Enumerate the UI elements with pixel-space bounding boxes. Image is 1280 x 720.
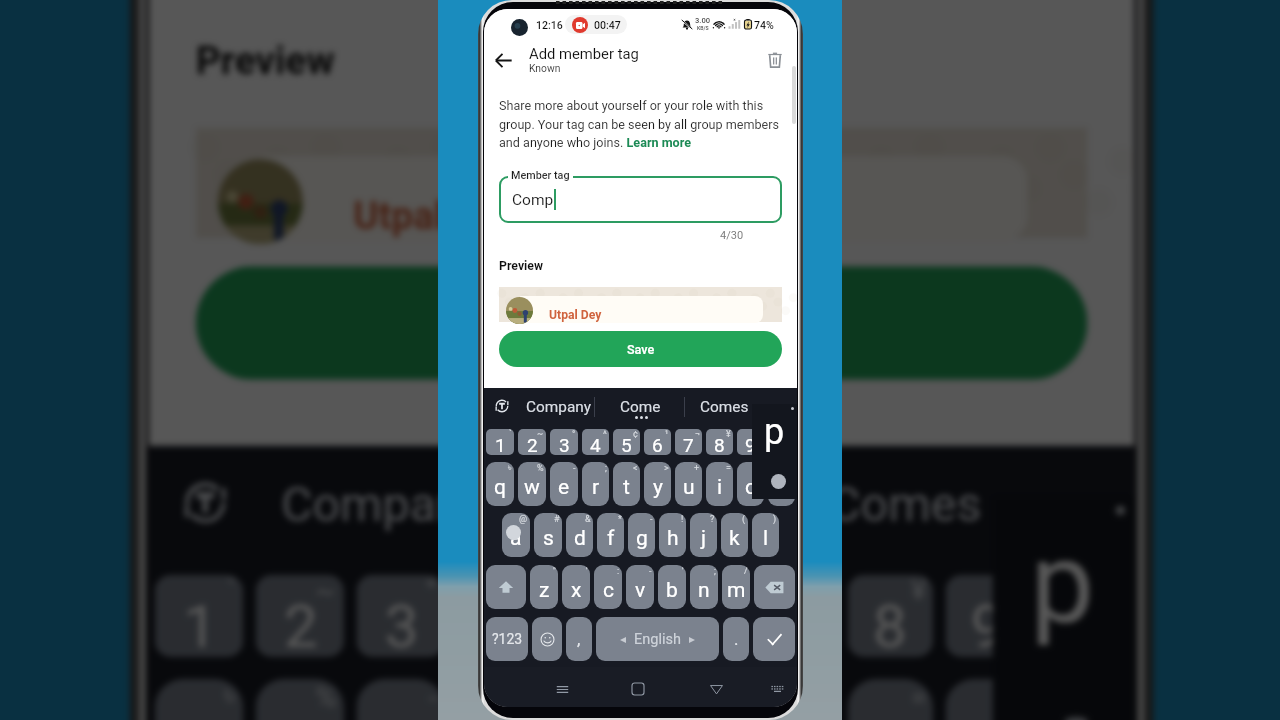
button[interactable]: Backspace — [754, 565, 795, 609]
button[interactable]: ' — [562, 565, 590, 609]
staticText: % — [537, 463, 544, 474]
button[interactable]: Comes — [788, 446, 1024, 566]
button[interactable]: ! — [659, 513, 686, 557]
button[interactable]: ^ — [457, 575, 542, 657]
button[interactable]: Delete tag — [761, 46, 789, 74]
button[interactable]: ৳ — [486, 462, 514, 506]
button[interactable]: # — [534, 513, 562, 557]
button[interactable]: · — [946, 575, 1031, 657]
button[interactable]: ° — [356, 575, 445, 657]
staticText: n — [698, 578, 710, 603]
button[interactable]: @ — [502, 513, 530, 557]
button[interactable]: ` — [486, 429, 514, 455]
button[interactable]: ~ — [518, 429, 546, 455]
button[interactable]: ?123 — [486, 617, 528, 661]
button[interactable]: > — [644, 462, 671, 506]
button[interactable]: " — [530, 565, 558, 609]
button[interactable]: ) — [768, 429, 795, 455]
button[interactable]: Done — [753, 617, 795, 661]
button[interactable]: - — [626, 565, 654, 609]
button[interactable]: Emoji — [532, 617, 562, 661]
button[interactable]: ; — [690, 565, 718, 609]
button[interactable]: - — [628, 513, 655, 557]
button[interactable]: Comes — [687, 388, 762, 426]
button[interactable]: % — [518, 462, 546, 506]
button[interactable]: - — [550, 462, 578, 506]
button[interactable]: ¢ — [555, 575, 640, 657]
button[interactable]: < — [613, 462, 640, 506]
button[interactable]: % — [256, 679, 344, 720]
staticText: u — [683, 475, 695, 500]
button[interactable]: Shift — [486, 565, 526, 609]
staticText: ( — [742, 514, 746, 525]
button[interactable]: Home — [624, 675, 652, 703]
button[interactable]: Recent apps — [548, 675, 576, 703]
button[interactable]: { — [946, 679, 1031, 720]
staticText: - — [573, 463, 576, 474]
button[interactable]: ' — [658, 565, 686, 609]
button[interactable]: : — [594, 565, 622, 609]
button[interactable]: · — [737, 429, 764, 455]
button[interactable]: ৳ — [155, 679, 243, 720]
button[interactable]: } — [1043, 679, 1128, 720]
staticText: - — [649, 566, 652, 577]
button[interactable]: / — [722, 565, 750, 609]
button[interactable]: Translate — [490, 394, 514, 418]
staticText: z — [539, 578, 550, 603]
button[interactable]: ^ — [582, 429, 609, 455]
staticText: q — [494, 475, 506, 500]
button[interactable]: ¬ — [750, 575, 835, 657]
button[interactable]: ¹ — [644, 429, 671, 455]
button[interactable]: Company — [524, 388, 594, 426]
button[interactable]: Save — [499, 331, 782, 367]
button[interactable]: Hide keyboard — [763, 675, 791, 703]
button[interactable]: , — [566, 617, 592, 661]
button[interactable]: Save — [196, 266, 1087, 380]
button[interactable]: Translate — [167, 465, 243, 540]
button[interactable]: Back — [702, 675, 730, 703]
staticText: 3.00 — [695, 16, 711, 25]
button[interactable]: > — [653, 679, 738, 720]
button[interactable]: Come — [597, 388, 683, 426]
button[interactable]: Navigate back — [489, 46, 517, 74]
button[interactable]: ¥ — [848, 575, 933, 657]
button[interactable]: ; — [582, 462, 609, 506]
button[interactable]: Company — [275, 446, 495, 566]
button[interactable]: English — [596, 617, 719, 661]
button[interactable]: = — [848, 679, 933, 720]
button[interactable]: ~ — [256, 575, 344, 657]
staticText: i — [717, 475, 723, 500]
staticText: 2 — [527, 434, 538, 455]
staticText: & — [585, 514, 591, 525]
staticText: p — [1031, 518, 1097, 651]
button[interactable]: ; — [457, 679, 542, 720]
button[interactable]: * — [597, 513, 624, 557]
button[interactable]: - — [356, 679, 445, 720]
button[interactable]: < — [555, 679, 640, 720]
button[interactable]: ( — [721, 513, 748, 557]
staticText: ' — [586, 566, 588, 577]
button[interactable]: ` — [155, 575, 243, 657]
button[interactable]: ¹ — [653, 575, 738, 657]
button[interactable]: ? — [690, 513, 717, 557]
staticText: ° — [426, 575, 438, 610]
staticText: ৳ — [224, 682, 237, 710]
button[interactable]: ) — [1043, 575, 1128, 657]
button[interactable]: + — [675, 462, 702, 506]
staticText: Save — [599, 301, 687, 348]
button[interactable]: { — [737, 462, 764, 506]
button[interactable]: ° — [550, 429, 578, 455]
button[interactable]: Come — [505, 446, 775, 566]
button[interactable]: ¢ — [613, 429, 640, 455]
button[interactable]: . — [723, 617, 749, 661]
button[interactable]: ) — [752, 513, 779, 557]
button[interactable]: = — [706, 462, 733, 506]
button[interactable]: } — [768, 462, 795, 506]
button[interactable]: + — [750, 679, 835, 720]
staticText: ` — [227, 575, 237, 610]
button[interactable]: & — [566, 513, 593, 557]
button[interactable]: ¬ — [675, 429, 702, 455]
button[interactable]: ¥ — [706, 429, 733, 455]
staticText: ¬ — [695, 429, 700, 440]
